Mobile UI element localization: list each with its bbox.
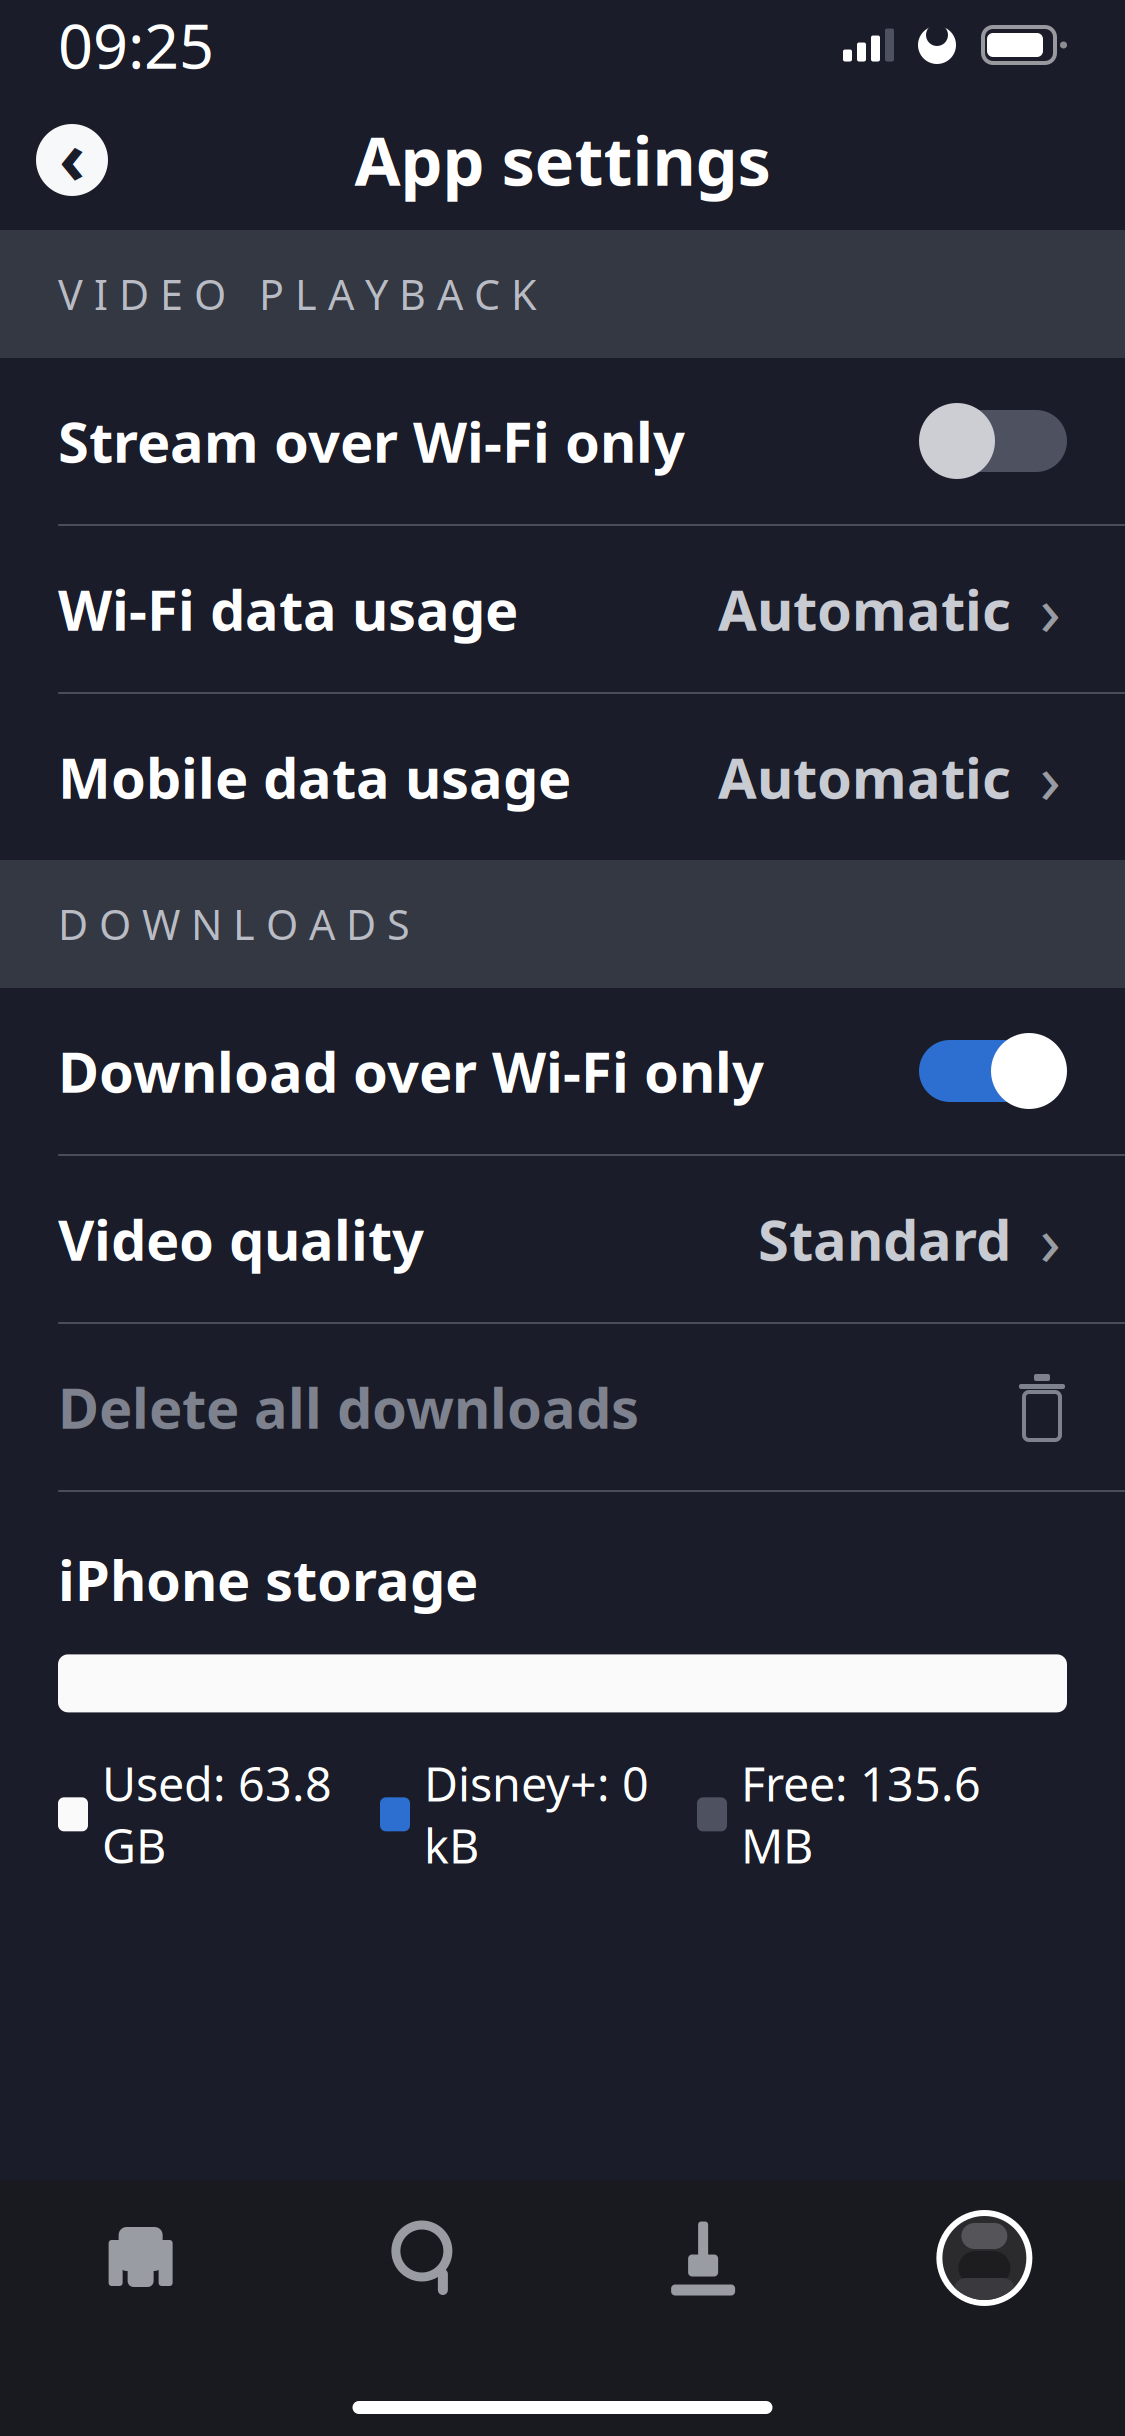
staticText: Mobile data usage bbox=[58, 740, 571, 814]
staticText: Standard bbox=[758, 1202, 1011, 1276]
button[interactable]: Profile bbox=[844, 2198, 1125, 2318]
button[interactable]: Download over Wi-Fi only bbox=[0, 988, 1125, 1154]
staticText: Video quality bbox=[58, 1202, 424, 1276]
staticText: Disney+: 0 kB bbox=[424, 1752, 649, 1876]
staticText: App settings bbox=[354, 116, 770, 204]
staticText: Stream over Wi-Fi only bbox=[58, 404, 685, 478]
button[interactable]: Mobile data usage bbox=[0, 694, 1125, 860]
button[interactable]: Video quality bbox=[0, 1156, 1125, 1322]
staticText: Download over Wi-Fi only bbox=[58, 1034, 764, 1108]
staticText: › bbox=[1039, 731, 1060, 823]
button[interactable]: Stream over Wi-Fi only bbox=[0, 358, 1125, 524]
staticText: Free: 135.6 MB bbox=[741, 1752, 981, 1876]
button[interactable]: Home bbox=[0, 2198, 281, 2318]
staticText: › bbox=[1039, 563, 1060, 655]
staticText: 09:25 bbox=[58, 4, 214, 86]
staticText: D O W N L O A D S bbox=[58, 897, 410, 951]
button[interactable]: Search bbox=[281, 2198, 562, 2318]
staticText: Delete all downloads bbox=[58, 1370, 639, 1444]
staticText: iPhone storage bbox=[58, 1542, 478, 1616]
button[interactable]: Wi-Fi data usage bbox=[0, 526, 1125, 692]
button[interactable]: Downloads bbox=[562, 2198, 844, 2318]
staticText: Wi-Fi data usage bbox=[58, 572, 518, 646]
staticText: Used: 63.8 GB bbox=[102, 1752, 332, 1876]
staticText: Automatic bbox=[718, 572, 1011, 646]
button[interactable]: Back bbox=[28, 116, 116, 204]
staticText: ‹ bbox=[59, 108, 85, 204]
staticText: › bbox=[1039, 1193, 1060, 1285]
staticText: Automatic bbox=[718, 740, 1011, 814]
staticText: V I D E O P L A Y B A C K bbox=[58, 267, 537, 321]
button[interactable]: Delete all downloads bbox=[0, 1324, 1125, 1490]
